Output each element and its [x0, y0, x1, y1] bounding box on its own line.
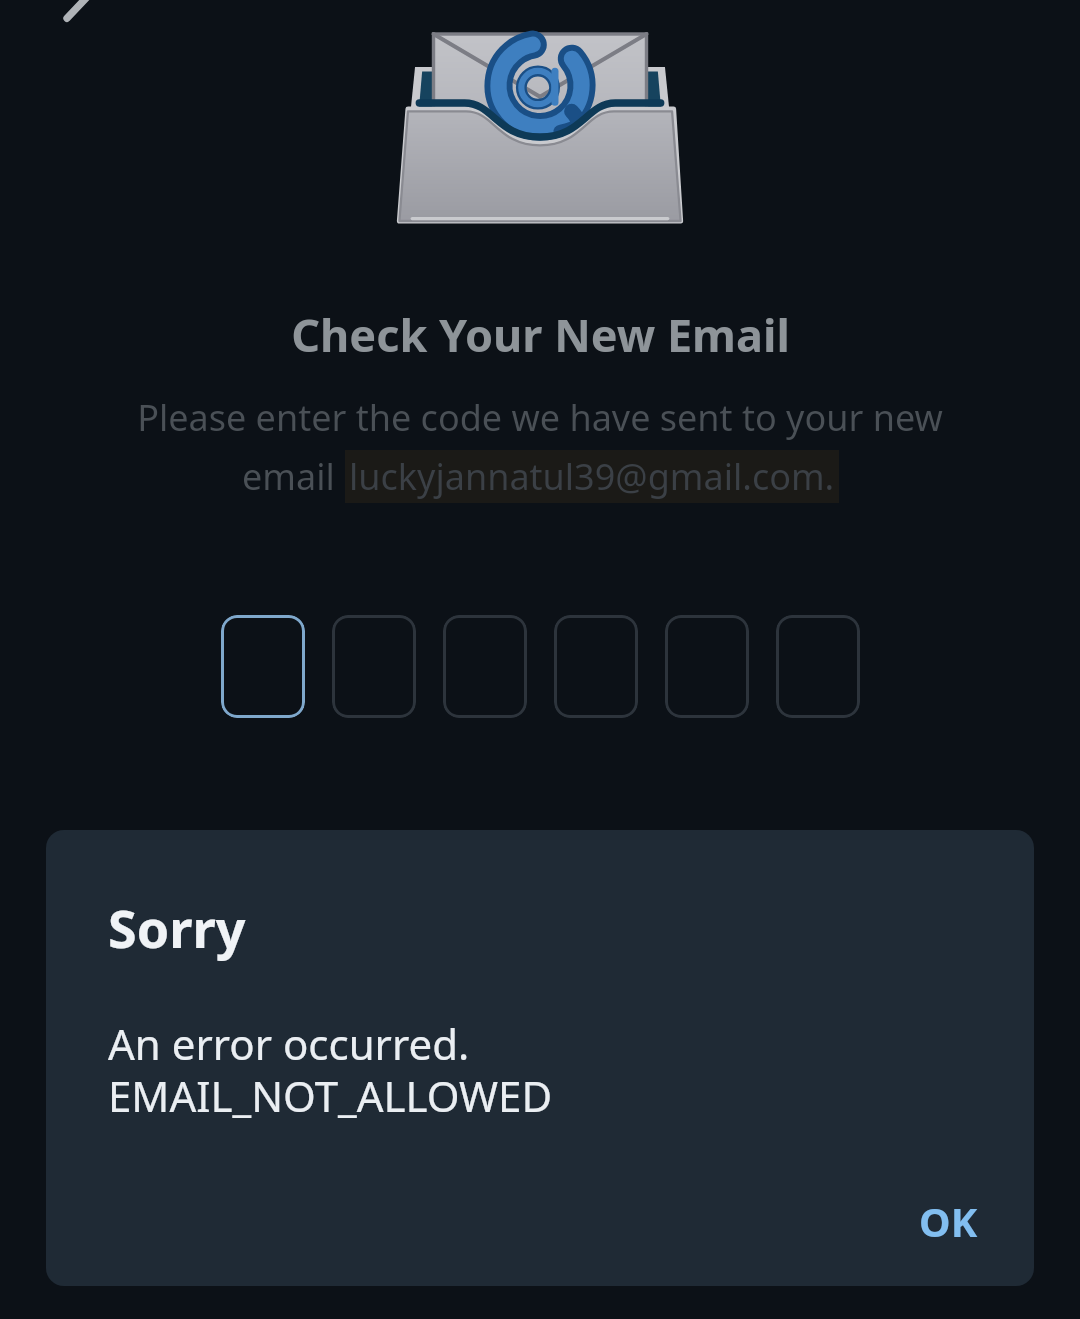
button[interactable]: Back	[30, 0, 116, 52]
button[interactable]	[443, 615, 527, 718]
staticText: Check Your New Email	[291, 304, 790, 365]
button[interactable]	[221, 615, 305, 718]
button[interactable]	[776, 615, 860, 718]
button[interactable]	[665, 615, 749, 718]
staticText: Please enter the code we have sent to yo…	[137, 393, 943, 442]
staticText: OK	[919, 1194, 978, 1248]
staticText: Sorry	[108, 892, 246, 963]
staticText: email	[242, 452, 345, 501]
button[interactable]: OK	[893, 1178, 1004, 1264]
staticText: luckyjannatul39@gmail.com.	[349, 452, 835, 501]
staticText: An error occurred. EMAIL_NOT_ALLOWED	[108, 1015, 553, 1124]
button[interactable]	[332, 615, 416, 718]
button[interactable]	[554, 615, 638, 718]
